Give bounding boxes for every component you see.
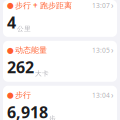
staticText: ● (7, 1, 14, 10)
staticText: 13:04 (92, 91, 110, 99)
staticText: 公里 (17, 25, 31, 33)
staticText: 步行 + 跑步距离 (15, 0, 72, 11)
staticText: 步 (49, 114, 56, 120)
button[interactable]: ● (3, 86, 117, 120)
staticText: 步行 (15, 90, 31, 100)
staticText: › (111, 90, 113, 100)
staticText: 大卡 (35, 70, 49, 78)
staticText: 4 (7, 12, 16, 33)
staticText: 13:07 (92, 1, 110, 10)
staticText: › (111, 45, 113, 55)
staticText: 6,918 (7, 101, 48, 120)
staticText: 13:05 (92, 46, 110, 55)
staticText: › (111, 0, 113, 11)
staticText: 262 (7, 56, 34, 78)
button[interactable]: ● (3, 41, 117, 82)
staticText: ● (7, 90, 14, 100)
button[interactable]: ● (3, 0, 117, 37)
staticText: 动态能量 (15, 45, 47, 55)
staticText: ● (7, 46, 14, 55)
